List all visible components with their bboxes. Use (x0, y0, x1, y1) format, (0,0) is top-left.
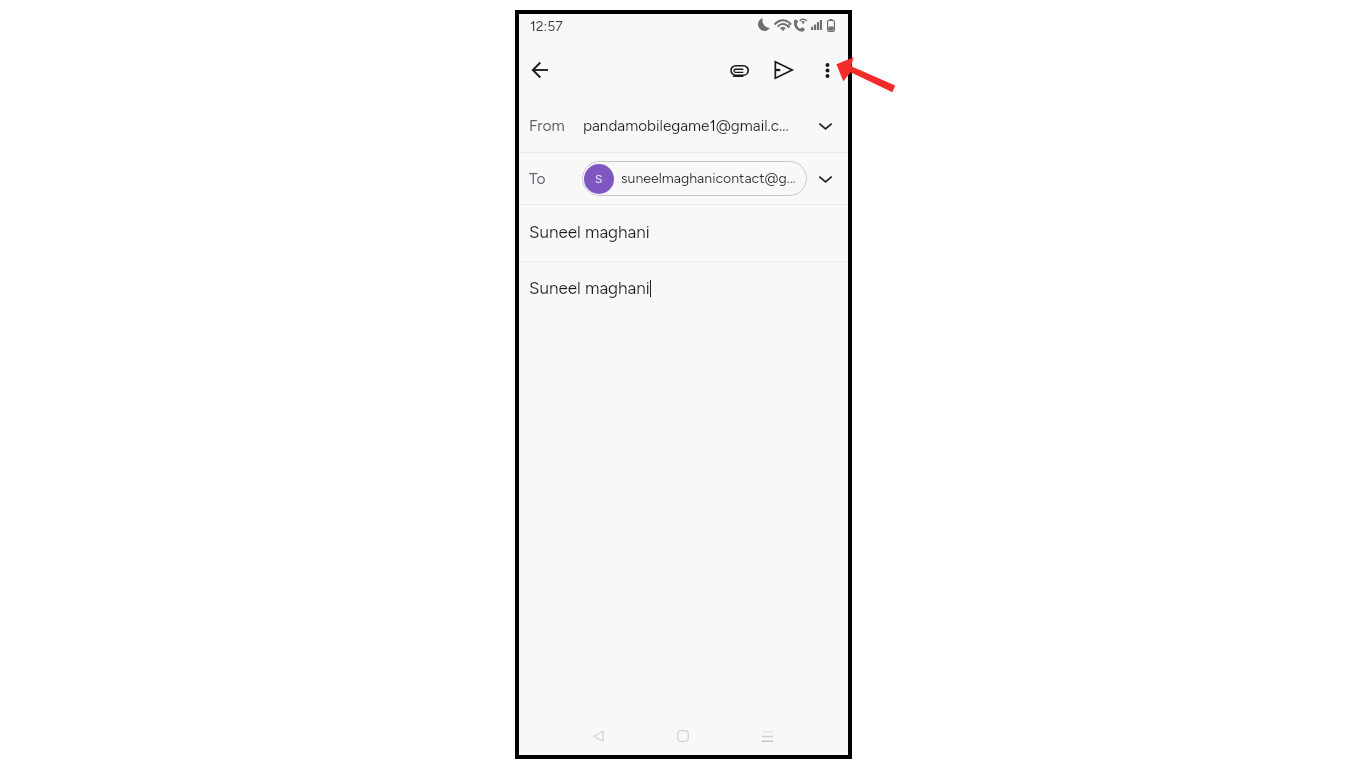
button[interactable]: Home (677, 730, 689, 742)
staticText: To (529, 169, 546, 188)
staticText: pandamobilegame1@gmail.c... (583, 116, 789, 134)
button[interactable]: From (519, 98, 848, 152)
button[interactable]: S (582, 161, 807, 196)
button[interactable]: Suneel maghani (519, 262, 848, 314)
staticText: S (595, 172, 603, 186)
staticText: Suneel maghani (529, 222, 650, 242)
button[interactable]: Show from options (809, 110, 841, 142)
staticText: 12:57 (530, 18, 563, 35)
staticText: suneelmaghanicontact@g... (621, 170, 796, 187)
button[interactable]: To (519, 153, 848, 204)
button[interactable]: Recent apps (762, 731, 773, 742)
button[interactable]: Show recipient options (809, 163, 841, 195)
button[interactable]: Back (522, 52, 558, 88)
staticText: Suneel maghani (529, 278, 650, 298)
button[interactable]: Back (593, 730, 604, 742)
button[interactable]: More options (809, 52, 845, 88)
button[interactable]: Attach file (721, 52, 757, 88)
staticText: From (529, 116, 565, 135)
button[interactable]: Send (765, 52, 801, 88)
button[interactable]: Suneel maghani (519, 205, 848, 261)
